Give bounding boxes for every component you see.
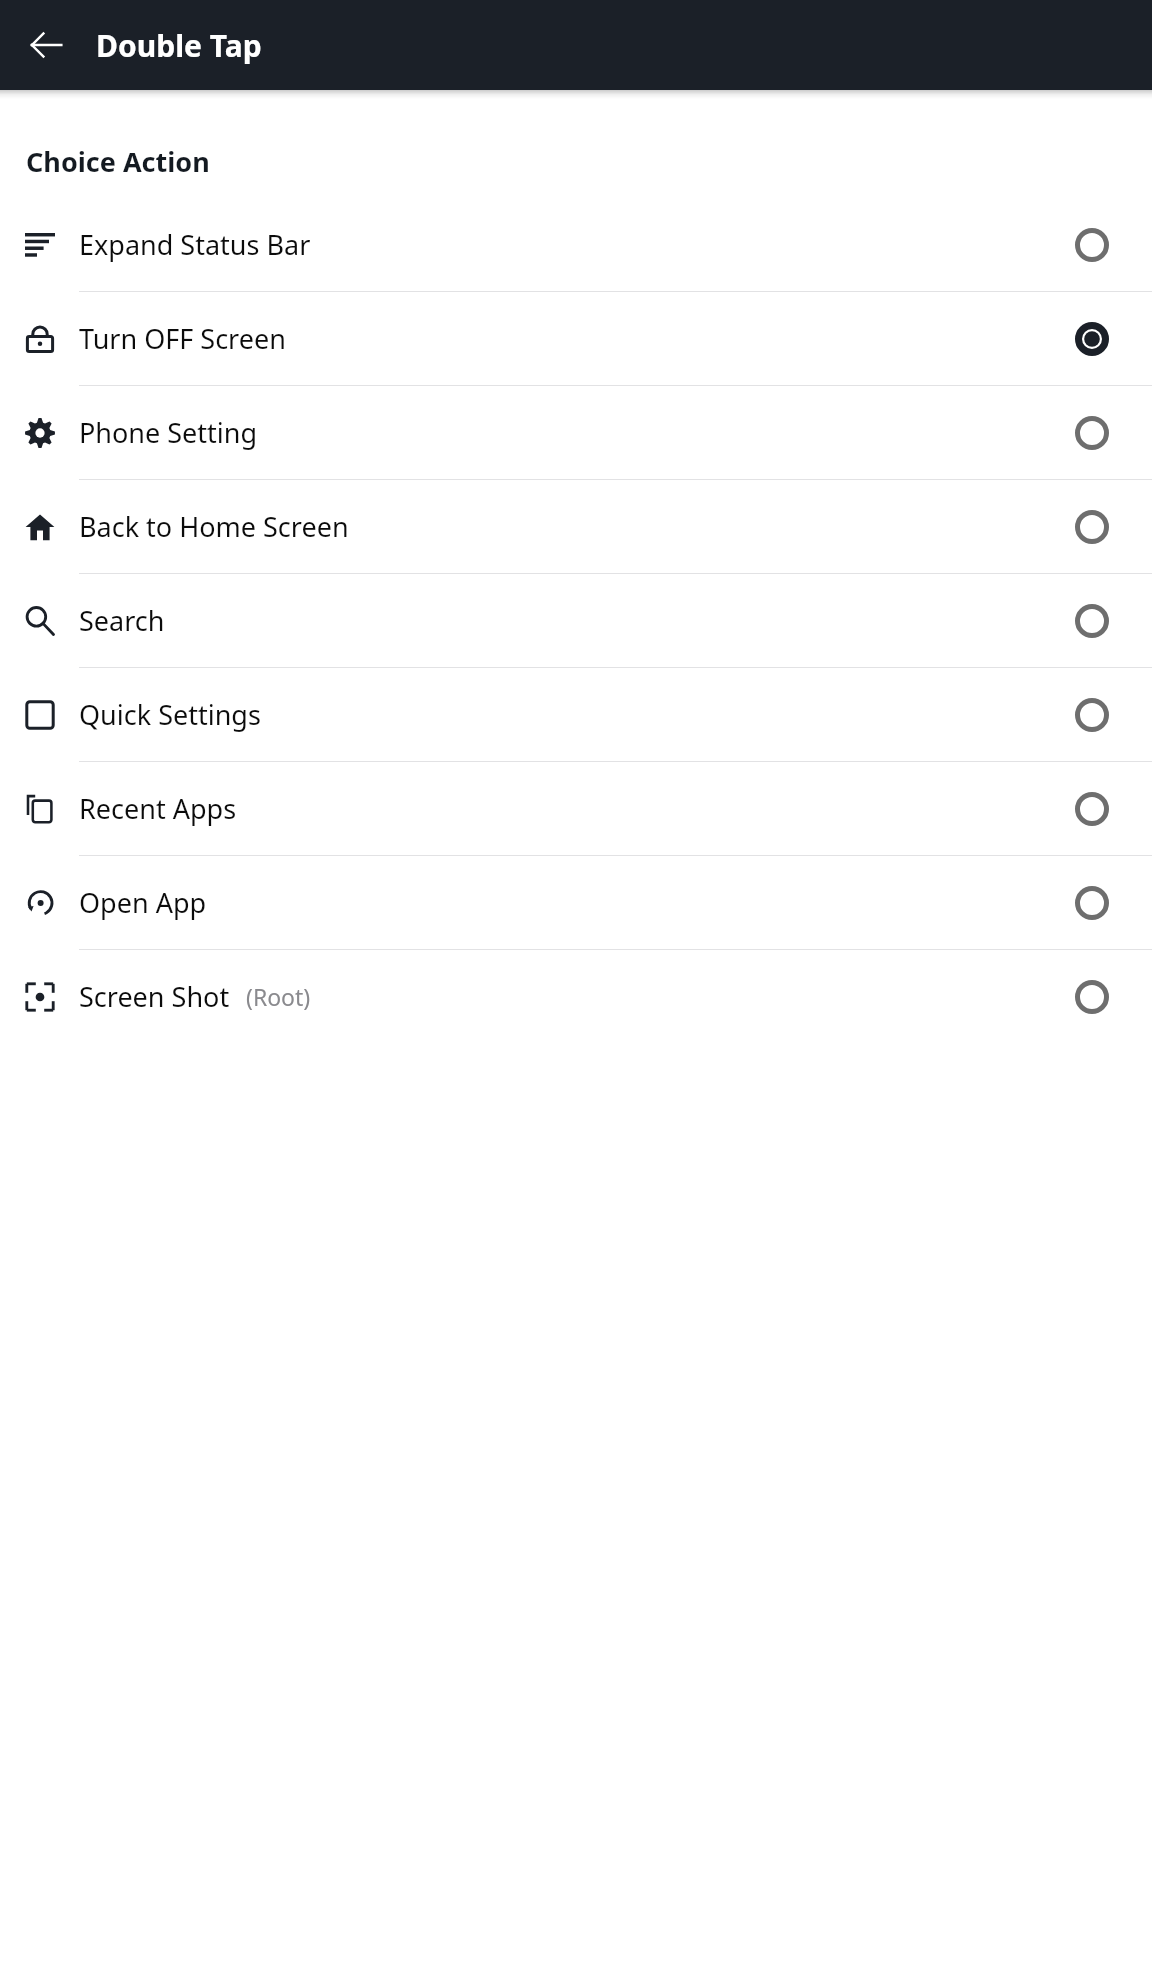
staticText: (Root) xyxy=(246,981,311,1012)
button[interactable]: Quick Settings xyxy=(0,668,1152,761)
button[interactable]: Back xyxy=(20,19,72,71)
button[interactable]: Phone Setting xyxy=(0,386,1152,479)
staticText: Turn OFF Screen xyxy=(79,320,286,357)
button[interactable]: Turn OFF Screen xyxy=(0,292,1152,385)
staticText: Choice Action xyxy=(26,143,210,180)
button[interactable]: Open App xyxy=(0,856,1152,949)
staticText: Back to Home Screen xyxy=(79,508,349,545)
staticText: Quick Settings xyxy=(79,696,261,733)
button[interactable]: Expand Status Bar xyxy=(0,198,1152,291)
button[interactable]: Back to Home Screen xyxy=(0,480,1152,573)
button[interactable]: Recent Apps xyxy=(0,762,1152,855)
button[interactable]: Search xyxy=(0,574,1152,667)
staticText: Recent Apps xyxy=(79,790,237,827)
button[interactable]: Screen Shot xyxy=(0,950,1152,1043)
staticText: Phone Setting xyxy=(79,414,258,451)
staticText: Double Tap xyxy=(96,25,262,66)
staticText: Search xyxy=(79,602,165,639)
staticText: Expand Status Bar xyxy=(79,226,311,263)
staticText: Open App xyxy=(79,884,207,921)
staticText: Screen Shot xyxy=(79,978,230,1015)
